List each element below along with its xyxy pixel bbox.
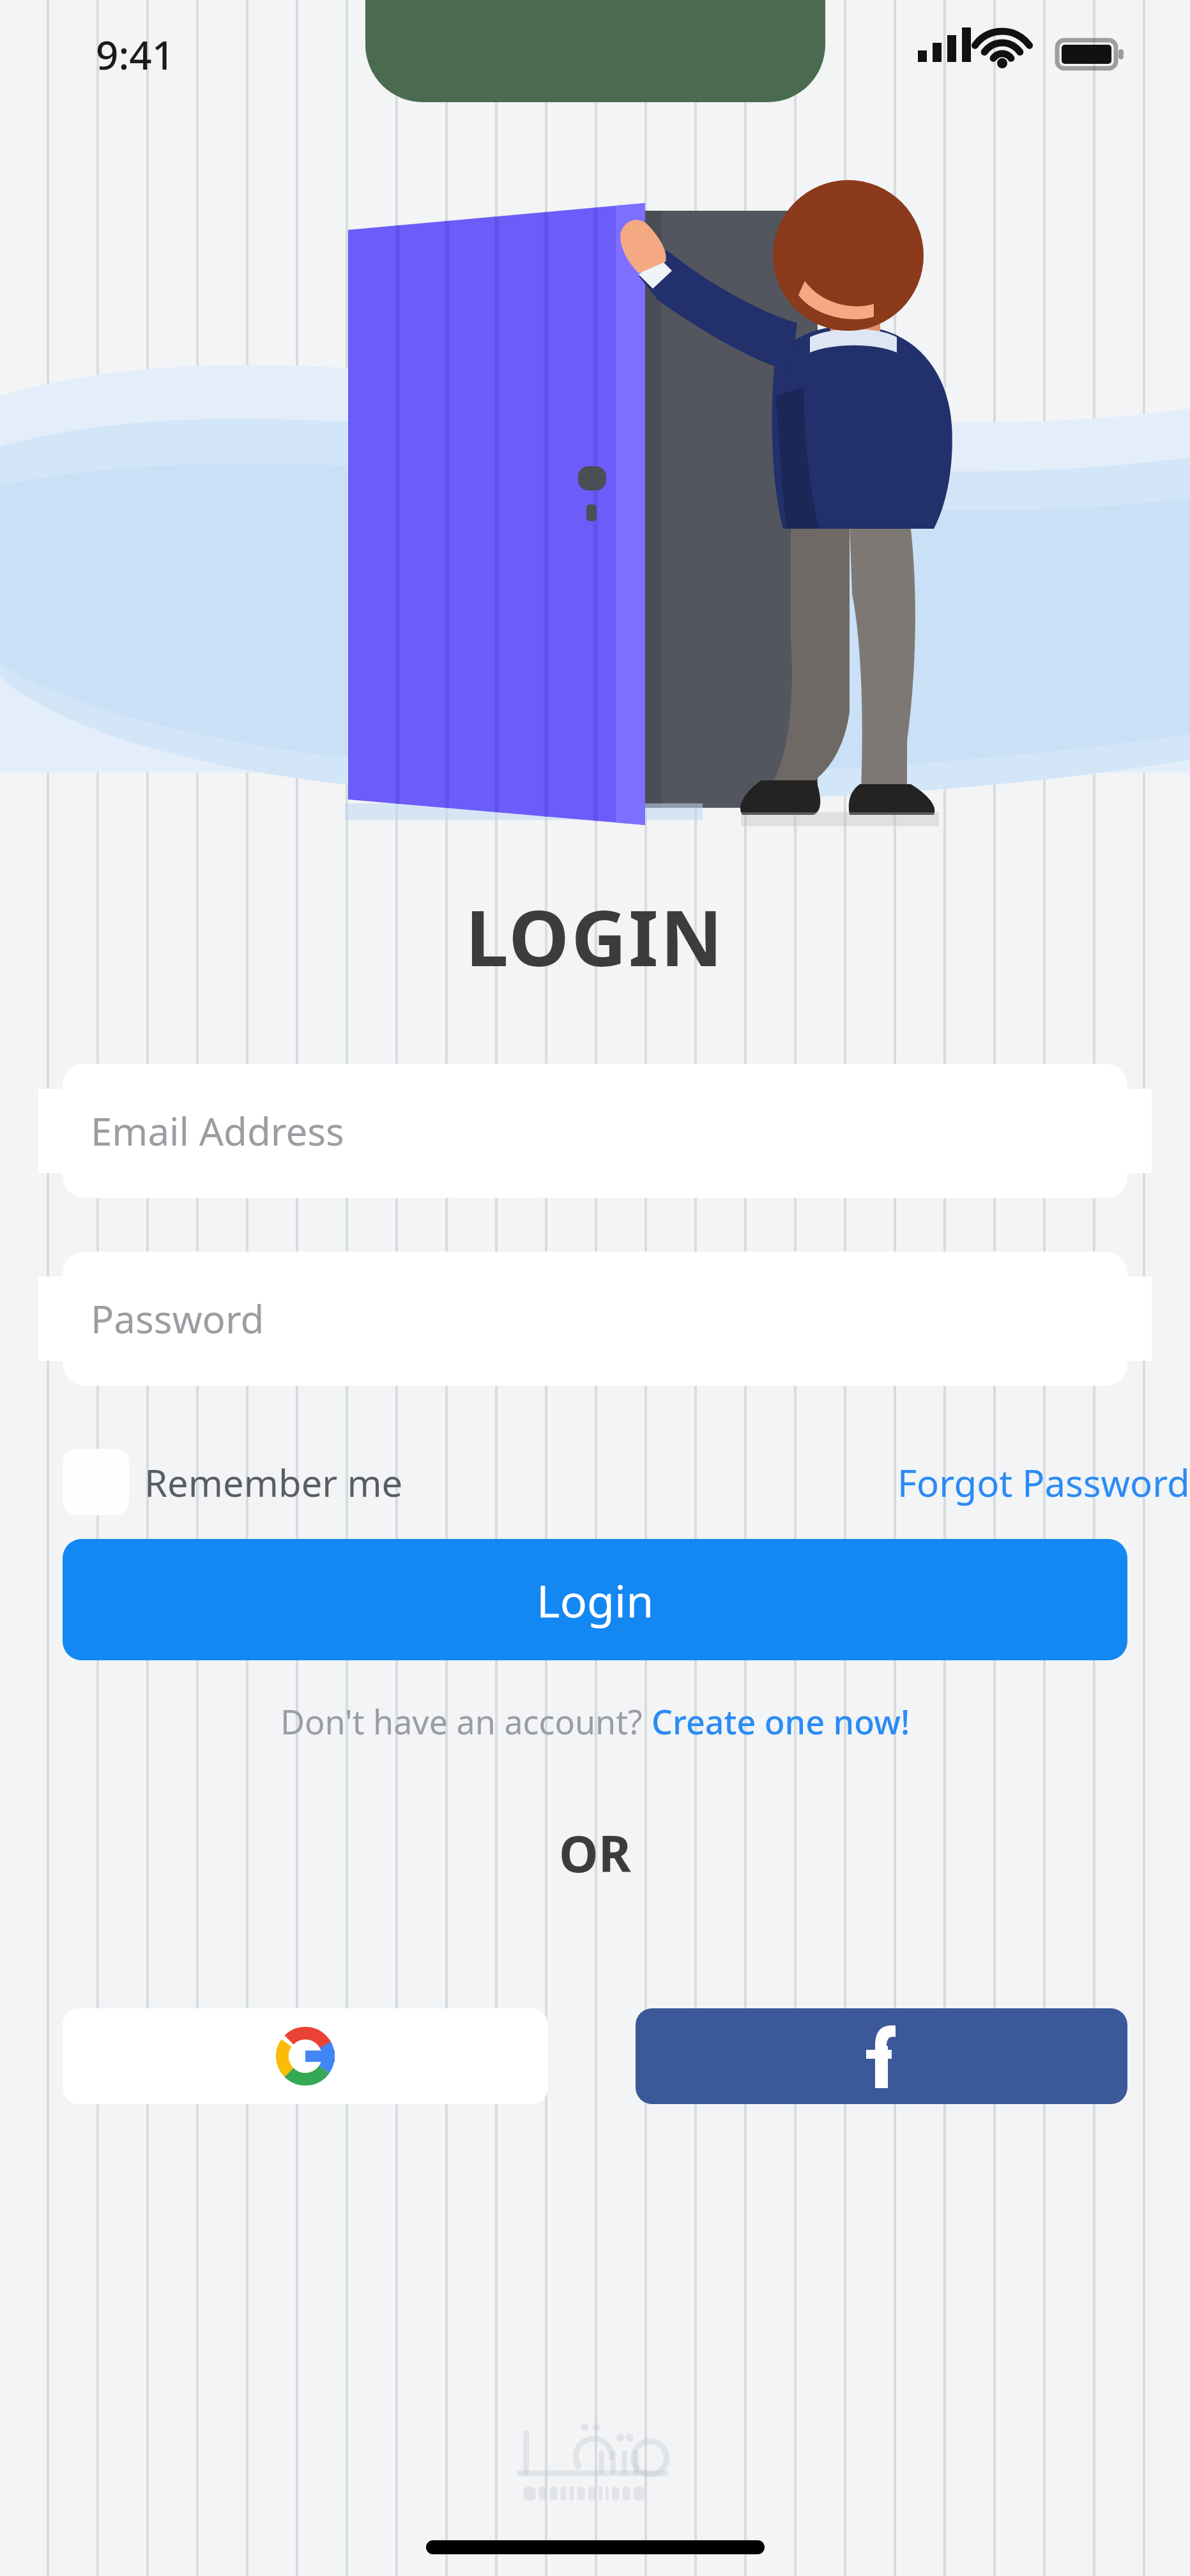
button[interactable]: Email Address	[0, 1064, 1190, 1198]
staticText: Login	[537, 1570, 654, 1630]
staticText: Forgot Password	[897, 1457, 1190, 1508]
staticText: Remember me	[144, 1457, 403, 1508]
staticText: Create one now!	[652, 1699, 910, 1744]
button[interactable]: Create one now!	[652, 1699, 910, 1744]
staticText: Email Address	[91, 1105, 344, 1157]
staticText: Password	[91, 1292, 264, 1345]
staticText: 9:41	[96, 27, 175, 81]
button[interactable]: Remember me	[63, 1449, 407, 1515]
staticText: Don't have an account?	[280, 1699, 652, 1744]
button[interactable]: Sign in with Facebook	[636, 2008, 1127, 2104]
button[interactable]: Login	[63, 1539, 1127, 1660]
staticText: OR	[0, 1819, 1190, 1887]
button[interactable]: Sign in with Google	[63, 2008, 548, 2104]
staticText: LOGIN	[0, 884, 1190, 989]
button[interactable]: Password	[0, 1252, 1190, 1386]
button[interactable]: Forgot Password	[897, 1457, 1190, 1508]
